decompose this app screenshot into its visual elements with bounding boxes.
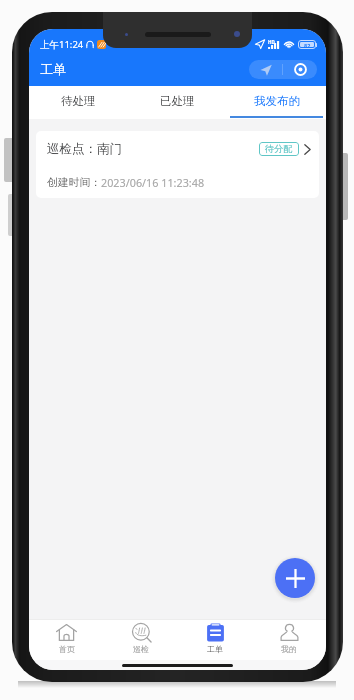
staticText: 2023/06/16 11:23:48: [101, 175, 205, 190]
staticText: 工单: [207, 644, 223, 654]
button[interactable]: 我发布的: [227, 86, 326, 119]
staticText: 首页: [59, 644, 75, 654]
staticText: 上午11:24: [40, 38, 84, 51]
button[interactable]: 待处理: [29, 86, 128, 119]
staticText: 工单: [40, 61, 66, 77]
staticText: 巡检: [133, 644, 149, 654]
button[interactable]: 新建工单: [275, 558, 315, 598]
button[interactable]: 更多: [283, 60, 317, 79]
staticText: 82: [304, 42, 311, 47]
button[interactable]: 我的: [252, 620, 326, 660]
staticText: 待处理: [61, 94, 96, 108]
button[interactable]: 巡检: [104, 620, 178, 660]
staticText: 已处理: [160, 94, 195, 108]
button[interactable]: 工单: [178, 620, 252, 660]
button[interactable]: 定位: [249, 60, 282, 79]
staticText: 我发布的: [254, 94, 300, 108]
staticText: HD: [268, 39, 275, 45]
staticText: 巡检点：南门: [47, 141, 122, 157]
button[interactable]: 已处理: [128, 86, 227, 119]
button[interactable]: 首页: [29, 620, 104, 660]
staticText: 我的: [281, 644, 297, 654]
staticText: 待分配: [265, 143, 293, 155]
button[interactable]: 巡检点：南门: [36, 131, 319, 198]
staticText: 创建时间：: [47, 176, 101, 190]
